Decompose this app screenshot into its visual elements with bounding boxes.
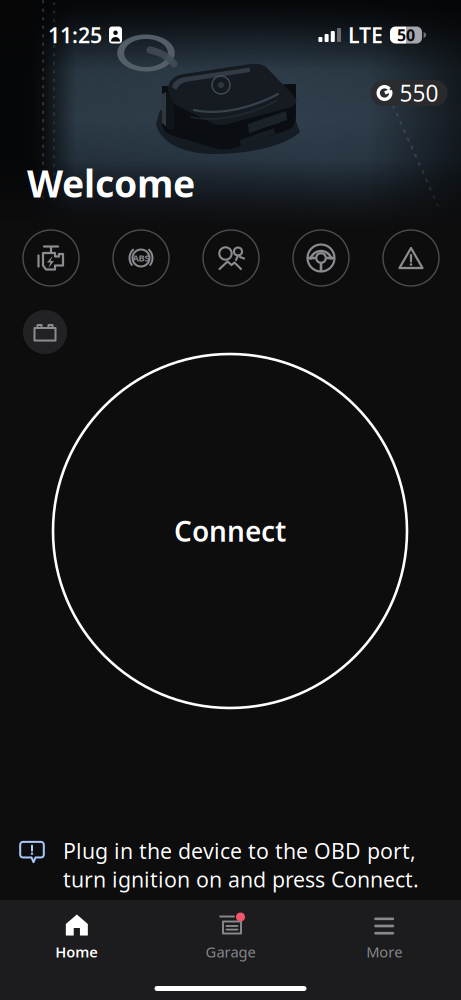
staticText: ABS bbox=[132, 252, 149, 264]
staticText: 11:25 bbox=[48, 21, 102, 49]
button[interactable]: Battery bbox=[23, 310, 67, 354]
staticText: Welcome bbox=[27, 158, 195, 208]
button[interactable]: 550 points bbox=[370, 80, 447, 106]
button[interactable]: Power steering bbox=[293, 230, 349, 286]
button[interactable]: Garage bbox=[154, 900, 307, 961]
button[interactable]: Airbag bbox=[203, 230, 259, 286]
staticText: Garage bbox=[205, 942, 255, 961]
staticText: LTE bbox=[348, 21, 383, 49]
button[interactable]: Home bbox=[0, 900, 154, 961]
button[interactable]: More bbox=[307, 900, 461, 961]
staticText: 50 bbox=[397, 24, 415, 46]
button[interactable]: ABS bbox=[113, 230, 169, 286]
button[interactable]: Warning bbox=[383, 230, 439, 286]
staticText: Connect bbox=[174, 512, 286, 550]
staticText: 550 bbox=[399, 78, 438, 108]
button[interactable]: Check engine bbox=[23, 230, 79, 286]
staticText: Home bbox=[55, 942, 98, 961]
staticText: Plug in the device to the OBD port, turn… bbox=[63, 837, 419, 893]
button[interactable]: Connect bbox=[52, 353, 408, 709]
staticText: More bbox=[366, 942, 402, 961]
